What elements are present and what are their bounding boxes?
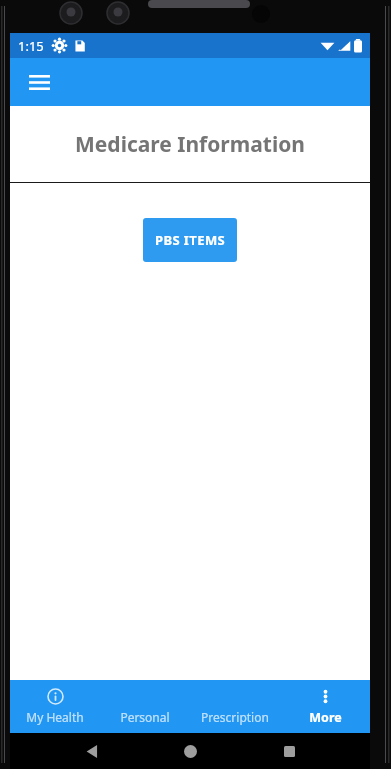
staticText: Personal bbox=[120, 709, 170, 725]
staticText: PBS ITEMS bbox=[155, 231, 226, 249]
button[interactable]: Back bbox=[75, 734, 109, 768]
button[interactable]: Personal bbox=[100, 684, 190, 729]
button[interactable]: PBS ITEMS bbox=[143, 218, 237, 262]
button[interactable]: My Health bbox=[10, 684, 100, 729]
staticText: More bbox=[309, 709, 342, 726]
staticText: My Health bbox=[26, 709, 84, 725]
button[interactable]: Open navigation menu bbox=[20, 63, 58, 101]
staticText: Medicare Information bbox=[75, 130, 305, 159]
staticText: Prescription bbox=[201, 709, 269, 725]
button[interactable]: Home bbox=[173, 734, 207, 768]
button[interactable]: Prescription bbox=[190, 684, 280, 729]
staticText: 1:15 bbox=[18, 37, 44, 55]
button[interactable]: More bbox=[280, 684, 370, 730]
button[interactable]: Recent apps bbox=[272, 734, 306, 768]
